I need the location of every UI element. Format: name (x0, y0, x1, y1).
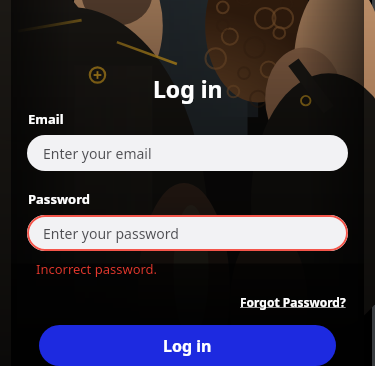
staticText: Incorrect password. (36, 260, 158, 278)
staticText: Enter your email (43, 144, 152, 163)
staticText: Enter your password (43, 224, 179, 243)
staticText: Log in (153, 73, 223, 104)
staticText: Forgot Password? (240, 294, 346, 310)
button[interactable]: Forgot Password? (238, 292, 348, 312)
staticText: Password (28, 190, 90, 208)
button[interactable]: Enter your password (27, 215, 348, 251)
staticText: Log in (163, 335, 212, 357)
button[interactable]: Log in (39, 325, 336, 366)
button[interactable]: Enter your email (27, 135, 348, 171)
staticText: Email (28, 110, 64, 128)
